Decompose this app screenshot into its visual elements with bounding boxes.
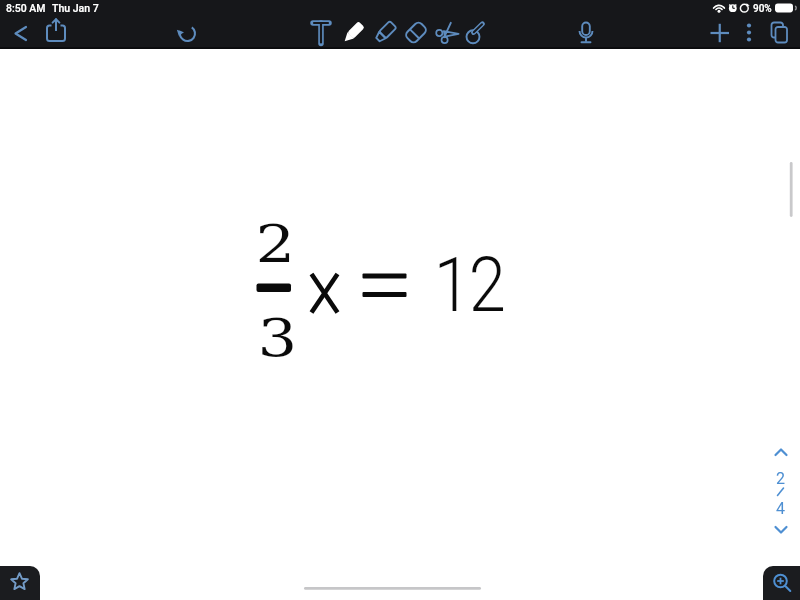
staticText: 2 <box>776 469 785 488</box>
staticText: 2 <box>256 214 296 275</box>
staticText: 8:50 AM <box>6 2 46 14</box>
staticText: 12 <box>434 240 504 329</box>
staticText: 4 <box>776 499 785 518</box>
staticText: Thu Jan 7 <box>52 2 99 14</box>
staticText: 3 <box>258 308 298 369</box>
staticText: 90% <box>753 3 772 15</box>
